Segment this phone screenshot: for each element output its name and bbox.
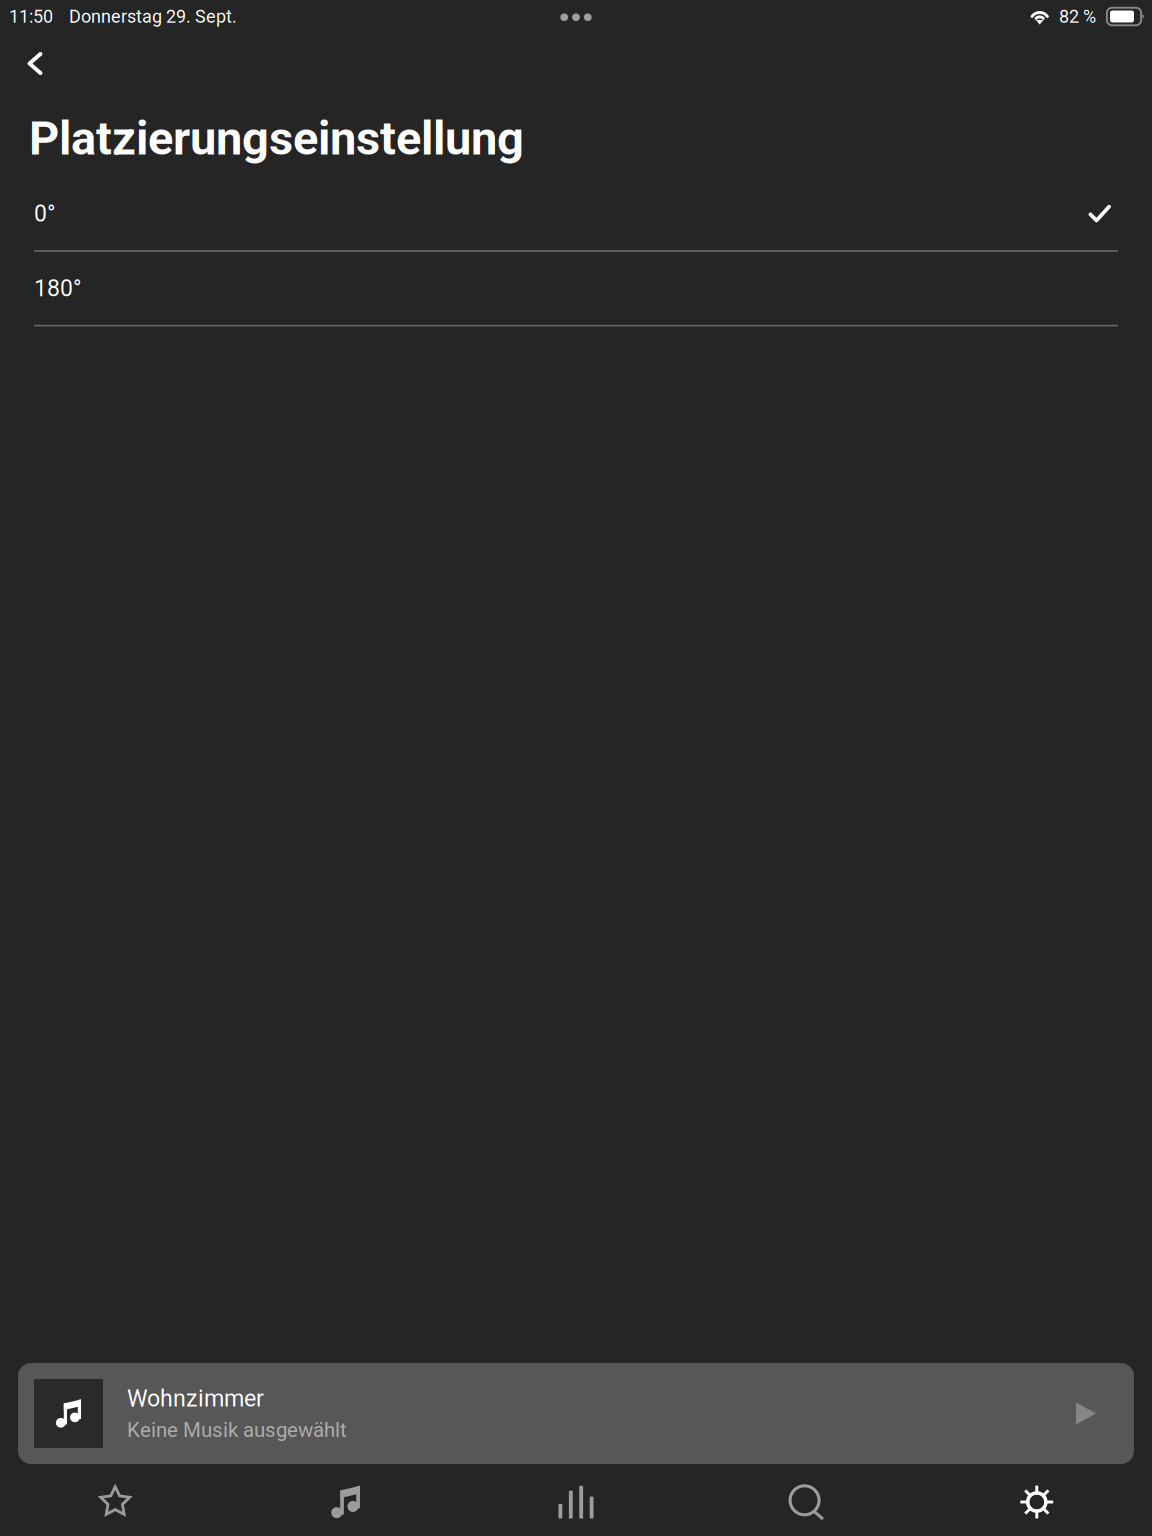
staticText: Keine Musik ausgewählt <box>127 1418 347 1442</box>
staticText: Donnerstag 29. Sept. <box>69 6 237 27</box>
button[interactable]: Equalizer <box>461 1464 691 1536</box>
button[interactable]: Favoriten <box>0 1464 230 1536</box>
staticText: 180° <box>34 275 82 302</box>
staticText: Platzierungseinstellung <box>29 111 524 166</box>
button[interactable]: 0° <box>0 177 1152 252</box>
button[interactable]: Einstellungen <box>922 1464 1152 1536</box>
button[interactable]: Zurück <box>13 41 57 85</box>
button[interactable]: Musik <box>230 1464 461 1536</box>
staticText: 0° <box>34 200 56 227</box>
staticText: Wohnzimmer <box>127 1385 264 1412</box>
button[interactable]: Wohnzimmer <box>18 1363 1134 1464</box>
button[interactable]: Suche <box>691 1464 922 1536</box>
button[interactable]: 180° <box>0 252 1152 326</box>
staticText: 11:50 <box>9 6 53 27</box>
staticText: 82 % <box>1059 6 1096 27</box>
